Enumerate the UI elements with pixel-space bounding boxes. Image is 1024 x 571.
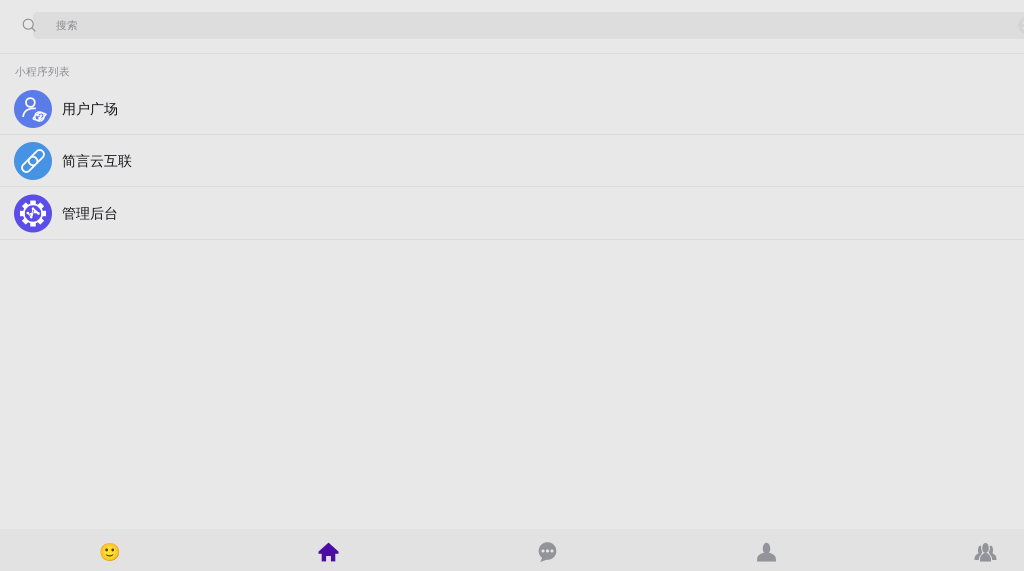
button[interactable]: 简言云互联 — [0, 135, 1024, 187]
staticText: 🙂 — [98, 542, 120, 562]
button[interactable]: 消息 — [438, 529, 657, 571]
staticText: 管理后台 — [62, 205, 118, 222]
button[interactable]: 群组 — [876, 529, 1024, 571]
button[interactable]: 我的 — [657, 529, 876, 571]
button[interactable]: 表情 — [0, 529, 219, 571]
staticText: 简言云互联 — [62, 152, 132, 170]
staticText: 小程序列表 — [15, 65, 70, 78]
button[interactable]: 管理后台 — [0, 187, 1024, 240]
staticText: 用户广场 — [62, 100, 118, 118]
button[interactable]: 首页 — [219, 529, 438, 571]
button[interactable]: 用户广场 — [0, 83, 1024, 135]
button[interactable]: 搜索 — [0, 0, 1024, 53]
staticText: 搜索 — [56, 19, 78, 32]
